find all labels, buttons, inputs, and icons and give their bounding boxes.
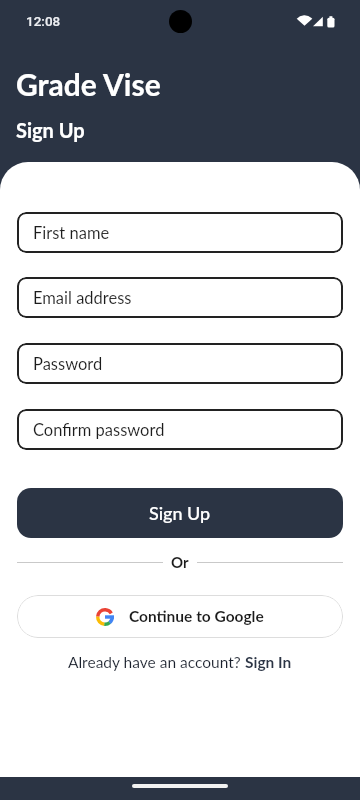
button[interactable]: Sign Up — [17, 488, 343, 538]
staticText: Confirm password — [33, 420, 165, 440]
staticText: Email address — [33, 288, 132, 308]
button[interactable]: Email address — [17, 277, 343, 318]
button[interactable]: Continue to Google — [17, 595, 343, 638]
staticText: 12:08 — [26, 13, 61, 29]
staticText: Or — [171, 553, 189, 571]
staticText: Sign Up — [149, 502, 211, 524]
button[interactable]: First name — [17, 212, 343, 253]
staticText: Already have an account? — [68, 653, 245, 672]
staticText: Sign In — [245, 653, 292, 672]
staticText: Continue to Google — [129, 607, 264, 626]
staticText: First name — [33, 223, 110, 243]
button[interactable]: Password — [17, 343, 343, 384]
staticText: Password — [33, 354, 103, 374]
staticText: Sign Up — [16, 118, 85, 142]
button[interactable]: Already have an account? — [68, 653, 292, 672]
button[interactable]: Confirm password — [17, 409, 343, 450]
staticText: Grade Vise — [16, 66, 161, 102]
